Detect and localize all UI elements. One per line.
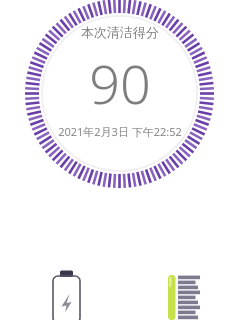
staticText: 2021年2月3日 下午22:52 <box>58 124 182 139</box>
button[interactable]: 本次清洁得分 <box>0 24 240 320</box>
staticText: 本次清洁得分 <box>81 24 159 40</box>
button[interactable]: Battery charging <box>45 268 89 320</box>
button[interactable]: Brush head <box>160 268 206 320</box>
staticText: 90 <box>89 46 151 120</box>
